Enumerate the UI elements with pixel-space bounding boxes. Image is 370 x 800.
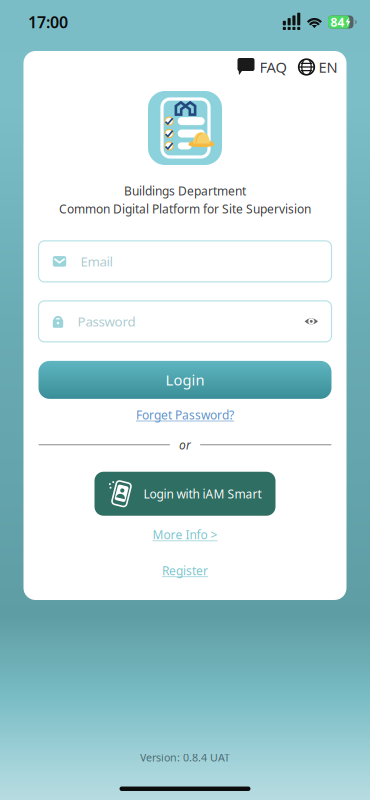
staticText: 84 bbox=[331, 14, 345, 30]
staticText: Buildings Department bbox=[124, 183, 246, 199]
staticText: Forget Password? bbox=[136, 407, 234, 423]
staticText: FAQ bbox=[259, 57, 286, 77]
button[interactable]: EN bbox=[298, 57, 337, 77]
staticText: Password bbox=[77, 312, 135, 330]
staticText: Login bbox=[165, 370, 204, 390]
staticText: Register bbox=[162, 563, 208, 579]
staticText: Email bbox=[80, 252, 112, 270]
staticText: Version: 0.8.4 UAT bbox=[140, 750, 230, 764]
button[interactable]: FAQ bbox=[237, 57, 286, 77]
staticText: Login with iAM Smart bbox=[143, 486, 261, 502]
staticText: Common Digital Platform for Site Supervi… bbox=[59, 201, 311, 217]
button[interactable]: Forget Password? bbox=[136, 407, 234, 423]
button[interactable]: Login bbox=[38, 361, 331, 399]
button[interactable]: Register bbox=[162, 563, 208, 579]
button[interactable]: Login with iAM Smart bbox=[94, 472, 275, 516]
staticText: or bbox=[179, 437, 191, 453]
button[interactable]: More Info > bbox=[152, 527, 217, 543]
staticText: EN bbox=[318, 57, 337, 77]
staticText: 17:00 bbox=[28, 11, 68, 33]
staticText: More Info > bbox=[152, 527, 217, 543]
